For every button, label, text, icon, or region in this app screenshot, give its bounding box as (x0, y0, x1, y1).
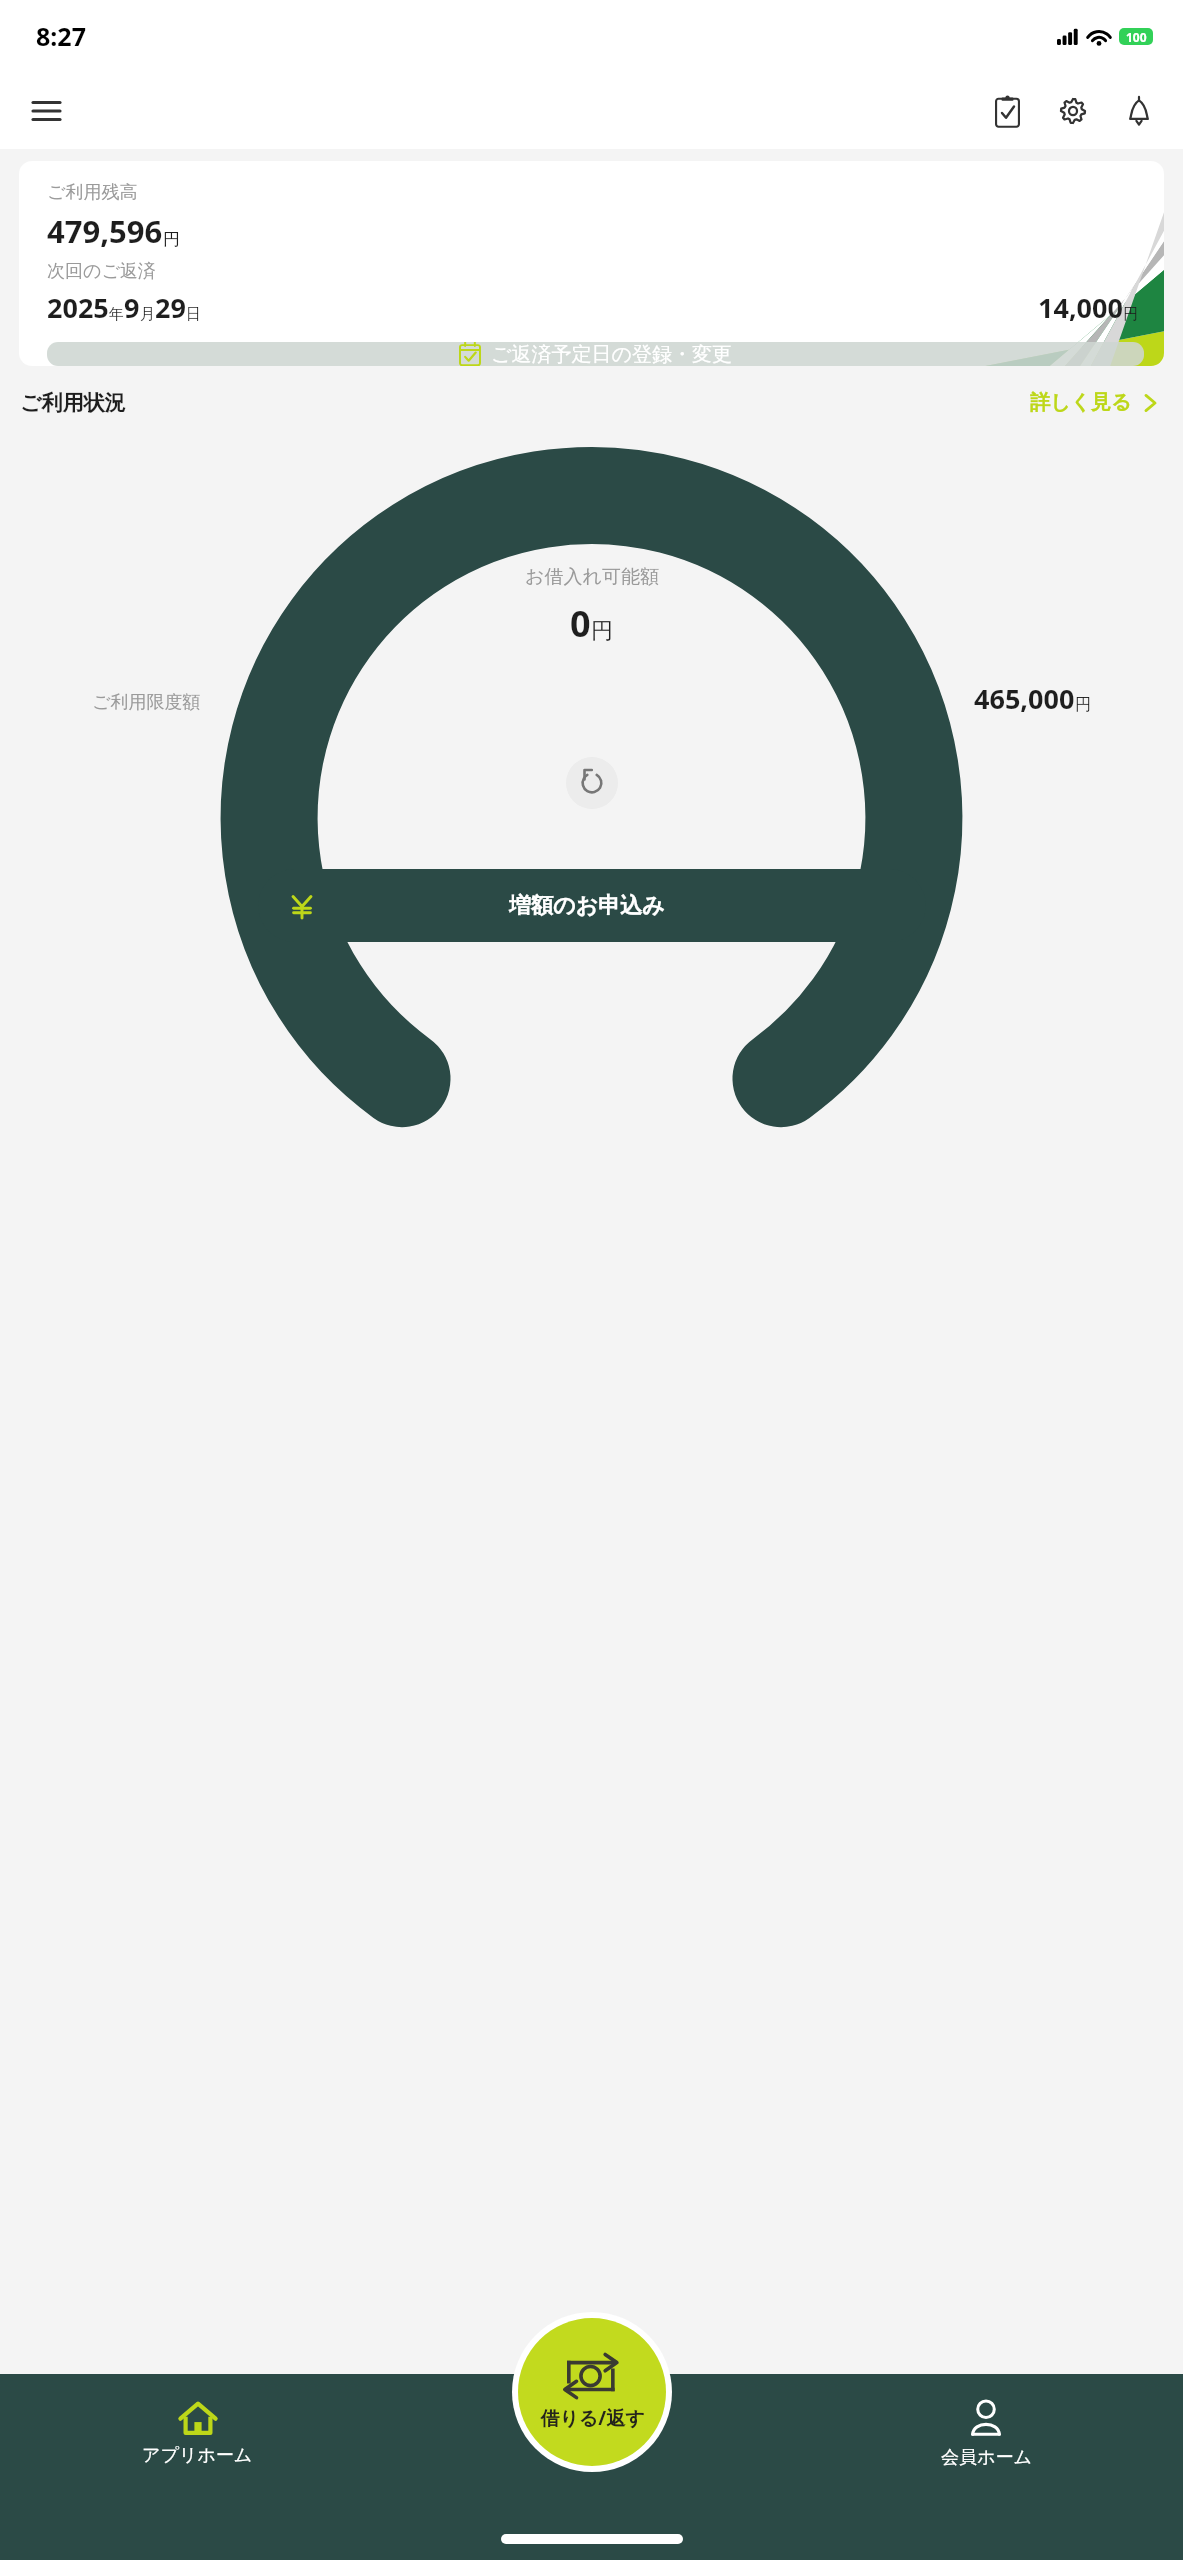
staticText: 465,000 (974, 680, 1075, 717)
staticText: 14,000 (1038, 289, 1123, 326)
staticText: ご返済予定日の登録・変更 (491, 342, 732, 366)
button[interactable]: Menu (22, 87, 70, 135)
staticText: 9 (124, 289, 140, 326)
staticText: ご利用状況 (20, 390, 126, 416)
button[interactable]: 会員ホーム (789, 2374, 1183, 2494)
staticText: 年 (109, 305, 124, 324)
button[interactable]: ご返済予定日の登録・変更 (47, 342, 1144, 366)
staticText: 円 (1123, 305, 1138, 324)
staticText: 8:27 (36, 19, 86, 53)
staticText: 借りる/返す (540, 2405, 645, 2431)
staticText: お借入れ可能額 (525, 565, 659, 589)
staticText: 増額のお申込み (509, 892, 665, 920)
staticText: ご利用限度額 (92, 691, 201, 714)
staticText: 円 (591, 617, 613, 645)
button[interactable]: Refresh (566, 757, 618, 809)
button[interactable]: 増額のお申込み (258, 869, 926, 942)
staticText: 2025 (47, 289, 109, 326)
staticText: 会員ホーム (941, 2446, 1032, 2469)
staticText: ご利用残高 (47, 181, 138, 204)
button[interactable]: アプリホーム (0, 2374, 395, 2494)
staticText: 円 (163, 229, 180, 250)
staticText: 詳しく見る (1030, 390, 1132, 415)
button[interactable]: Tasks (983, 87, 1031, 135)
button[interactable]: Notifications (1115, 87, 1163, 135)
staticText: 次回のご返済 (47, 260, 156, 283)
button[interactable]: Settings (1049, 87, 1097, 135)
staticText: 円 (1075, 695, 1091, 715)
staticText: アプリホーム (142, 2444, 253, 2467)
staticText: 月 (140, 305, 155, 324)
staticText: 479,596 (47, 210, 163, 252)
button[interactable]: 借りる/返す (518, 2318, 666, 2466)
staticText: 0 (570, 599, 591, 648)
staticText: 日 (186, 305, 201, 324)
button[interactable]: 詳しく見る (1024, 384, 1163, 421)
staticText: 29 (155, 289, 186, 326)
staticText: 100 (1126, 29, 1147, 45)
